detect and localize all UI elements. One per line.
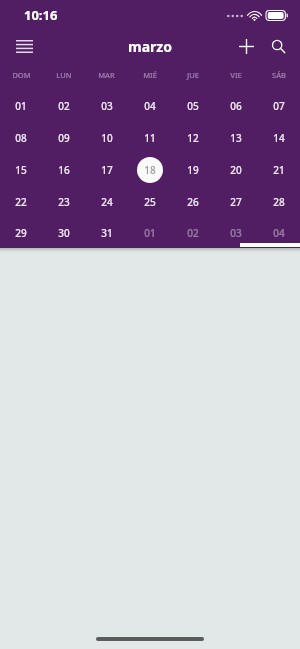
- staticText: 05: [187, 99, 199, 113]
- staticText: 16: [58, 163, 70, 177]
- button[interactable]: 30: [42, 218, 85, 248]
- button[interactable]: 21: [257, 154, 300, 186]
- button[interactable]: 25: [128, 186, 171, 218]
- button[interactable]: 29: [0, 218, 42, 248]
- button[interactable]: 08: [0, 122, 42, 154]
- staticText: 23: [58, 195, 70, 209]
- staticText: 26: [187, 195, 199, 209]
- staticText: JUE: [187, 70, 199, 80]
- staticText: 18: [144, 163, 156, 177]
- button[interactable]: Añadir: [230, 30, 262, 62]
- button[interactable]: 16: [42, 154, 85, 186]
- staticText: 04: [273, 226, 285, 240]
- staticText: MAR: [98, 70, 115, 80]
- staticText: 27: [230, 195, 242, 209]
- staticText: 03: [101, 99, 113, 113]
- staticText: 14: [273, 131, 285, 145]
- staticText: 02: [187, 226, 199, 240]
- button[interactable]: 15: [0, 154, 42, 186]
- button[interactable]: Buscar: [262, 30, 294, 62]
- button[interactable]: 02: [42, 90, 85, 122]
- button[interactable]: 02: [171, 218, 214, 248]
- staticText: 24: [101, 195, 113, 209]
- staticText: 29: [15, 226, 27, 240]
- button[interactable]: 12: [171, 122, 214, 154]
- button[interactable]: 27: [214, 186, 257, 218]
- button[interactable]: 22: [0, 186, 42, 218]
- button[interactable]: 05: [171, 90, 214, 122]
- button[interactable]: Menú: [8, 30, 40, 62]
- button[interactable]: 31: [85, 218, 128, 248]
- button[interactable]: 26: [171, 186, 214, 218]
- staticText: SÁB: [272, 70, 286, 80]
- button[interactable]: 24: [85, 186, 128, 218]
- staticText: 11: [144, 131, 156, 145]
- staticText: 21: [273, 163, 285, 177]
- button[interactable]: 23: [42, 186, 85, 218]
- button[interactable]: 03: [85, 90, 128, 122]
- button[interactable]: 17: [85, 154, 128, 186]
- staticText: 13: [230, 131, 242, 145]
- staticText: 02: [58, 99, 70, 113]
- staticText: 10: [101, 131, 113, 145]
- staticText: 28: [273, 195, 285, 209]
- button[interactable]: 19: [171, 154, 214, 186]
- staticText: 08: [15, 131, 27, 145]
- staticText: 10:16: [24, 6, 58, 24]
- staticText: marzo: [128, 37, 172, 56]
- staticText: VIE: [230, 70, 242, 80]
- staticText: 15: [15, 163, 27, 177]
- button[interactable]: 11: [128, 122, 171, 154]
- staticText: 12: [187, 131, 199, 145]
- staticText: 06: [230, 99, 242, 113]
- staticText: DOM: [12, 70, 31, 80]
- button[interactable]: 10: [85, 122, 128, 154]
- staticText: 17: [101, 163, 113, 177]
- button[interactable]: 18: [128, 154, 171, 186]
- staticText: 07: [273, 99, 285, 113]
- button[interactable]: 13: [214, 122, 257, 154]
- button[interactable]: 14: [257, 122, 300, 154]
- staticText: 30: [58, 226, 70, 240]
- button[interactable]: 03: [214, 218, 257, 248]
- button[interactable]: 28: [257, 186, 300, 218]
- staticText: 25: [144, 195, 156, 209]
- button[interactable]: 09: [42, 122, 85, 154]
- staticText: 19: [187, 163, 199, 177]
- staticText: 31: [101, 226, 113, 240]
- staticText: 04: [144, 99, 156, 113]
- staticText: MIÉ: [143, 70, 157, 80]
- staticText: 09: [58, 131, 70, 145]
- button[interactable]: 01: [0, 90, 42, 122]
- button[interactable]: 04: [257, 218, 300, 248]
- button[interactable]: 20: [214, 154, 257, 186]
- button[interactable]: 06: [214, 90, 257, 122]
- staticText: 20: [230, 163, 242, 177]
- button[interactable]: 07: [257, 90, 300, 122]
- staticText: 01: [144, 226, 156, 240]
- staticText: LUN: [56, 70, 72, 80]
- staticText: 01: [15, 99, 27, 113]
- button[interactable]: 04: [128, 90, 171, 122]
- staticText: 22: [15, 195, 27, 209]
- staticText: 03: [230, 226, 242, 240]
- button[interactable]: 01: [128, 218, 171, 248]
